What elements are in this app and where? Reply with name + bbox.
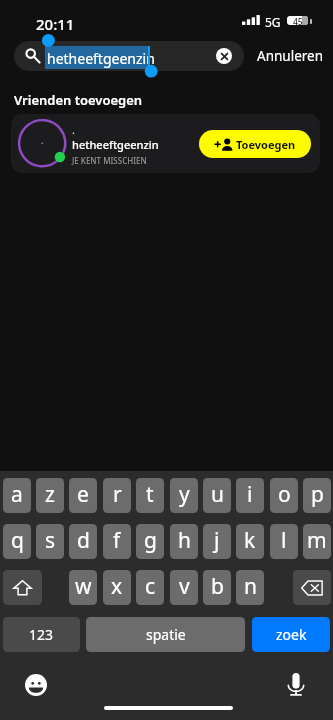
staticText: o: [278, 480, 291, 509]
staticText: w: [75, 572, 92, 601]
button[interactable]: Wissen: [216, 48, 232, 64]
button[interactable]: k: [236, 524, 264, 559]
staticText: m: [307, 526, 327, 555]
button[interactable]: j: [203, 524, 231, 559]
staticText: Toevoegen: [236, 137, 296, 152]
button[interactable]: u: [203, 478, 231, 513]
staticText: z: [45, 480, 55, 509]
staticText: n: [244, 572, 257, 601]
button[interactable]: hetheeftgeenzin: [14, 41, 244, 71]
staticText: 20:11: [36, 14, 75, 34]
button[interactable]: a: [3, 478, 31, 513]
staticText: b: [211, 572, 224, 601]
button[interactable]: v: [170, 570, 198, 605]
button[interactable]: Emoji: [25, 674, 47, 696]
staticText: x: [111, 572, 123, 601]
button[interactable]: m: [303, 524, 331, 559]
staticText: y: [179, 480, 190, 509]
button[interactable]: r: [103, 478, 131, 513]
button[interactable]: x: [103, 570, 131, 605]
staticText: Vrienden toevoegen: [14, 91, 143, 109]
staticText: v: [179, 572, 190, 601]
button[interactable]: i: [236, 478, 264, 513]
button[interactable]: t: [136, 478, 164, 513]
staticText: a: [11, 480, 23, 509]
button[interactable]: n: [236, 570, 264, 605]
staticText: JE KENT MISSCHIEN: [72, 155, 147, 166]
staticText: i: [247, 480, 253, 509]
staticText: j: [214, 526, 220, 555]
button[interactable]: zoek: [252, 617, 330, 652]
staticText: u: [211, 480, 224, 509]
staticText: k: [244, 526, 256, 555]
staticText: f: [113, 526, 121, 555]
staticText: hetheeftgeenzin: [47, 49, 155, 68]
button[interactable]: Shift: [3, 570, 42, 605]
button[interactable]: q: [3, 524, 31, 559]
staticText: t: [146, 480, 154, 509]
button[interactable]: h: [170, 524, 198, 559]
button[interactable]: w: [69, 570, 97, 605]
staticText: g: [144, 526, 157, 555]
staticText: p: [311, 480, 324, 509]
button[interactable]: spatie: [86, 617, 245, 652]
button[interactable]: y: [170, 478, 198, 513]
button[interactable]: c: [136, 570, 164, 605]
button[interactable]: p: [303, 478, 331, 513]
button[interactable]: d: [69, 524, 97, 559]
button[interactable]: 123: [3, 617, 80, 652]
button[interactable]: z: [36, 478, 64, 513]
button[interactable]: e: [69, 478, 97, 513]
staticText: hetheeftgeenzin: [72, 137, 159, 152]
staticText: c: [145, 572, 156, 601]
staticText: 45: [293, 16, 303, 25]
staticText: r: [113, 480, 122, 509]
staticText: e: [77, 480, 89, 509]
staticText: Annuleren: [257, 47, 324, 65]
button[interactable]: f: [103, 524, 131, 559]
staticText: zoek: [276, 625, 307, 644]
button[interactable]: Dicteren: [288, 673, 304, 696]
button[interactable]: l: [270, 524, 298, 559]
staticText: s: [45, 526, 56, 555]
staticText: l: [281, 526, 287, 555]
button[interactable]: Backspace: [293, 570, 331, 605]
staticText: 123: [29, 625, 54, 644]
staticText: spatie: [146, 625, 186, 644]
button[interactable]: .: [11, 114, 320, 173]
staticText: q: [11, 526, 24, 555]
staticText: h: [178, 526, 191, 555]
button[interactable]: Toevoegen: [199, 130, 311, 158]
staticText: .: [72, 122, 75, 137]
staticText: 5G: [265, 14, 281, 30]
staticText: d: [77, 526, 90, 555]
button[interactable]: o: [270, 478, 298, 513]
button[interactable]: s: [36, 524, 64, 559]
button[interactable]: Annuleren: [257, 41, 324, 71]
button[interactable]: g: [136, 524, 164, 559]
button[interactable]: b: [203, 570, 231, 605]
